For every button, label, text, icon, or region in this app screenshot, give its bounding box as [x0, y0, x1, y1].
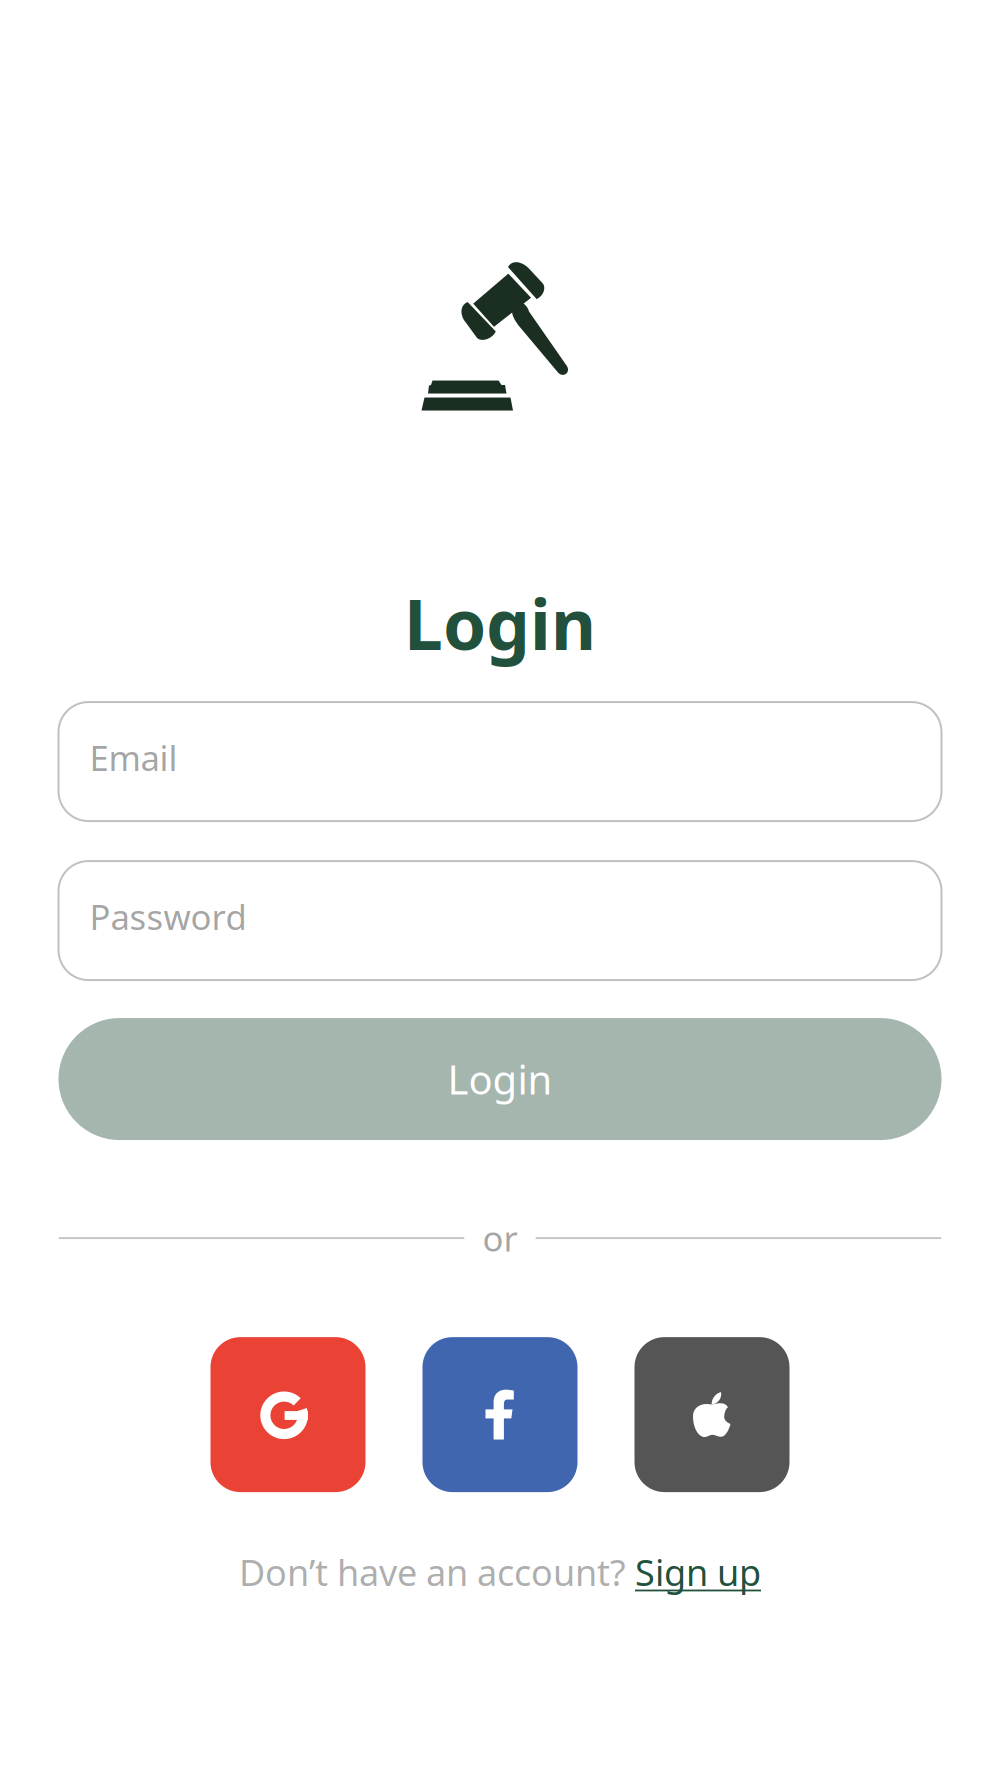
staticText: Password [89, 894, 246, 940]
staticText: or [482, 1215, 517, 1261]
button[interactable]: Password [58, 861, 941, 980]
button[interactable]: Sign in with Facebook [422, 1337, 577, 1492]
button[interactable]: Login [58, 1018, 941, 1140]
staticText: Login [404, 577, 596, 669]
button[interactable]: Sign in with Google [210, 1337, 365, 1492]
staticText: Sign up [635, 1548, 761, 1596]
button[interactable]: Email [58, 702, 941, 821]
staticText: Don’t have an account? [239, 1548, 626, 1596]
staticText: Login [447, 1052, 552, 1106]
button[interactable]: Sign up [635, 1548, 761, 1596]
staticText: Email [89, 735, 177, 781]
button[interactable]: Sign in with Apple [634, 1337, 789, 1492]
